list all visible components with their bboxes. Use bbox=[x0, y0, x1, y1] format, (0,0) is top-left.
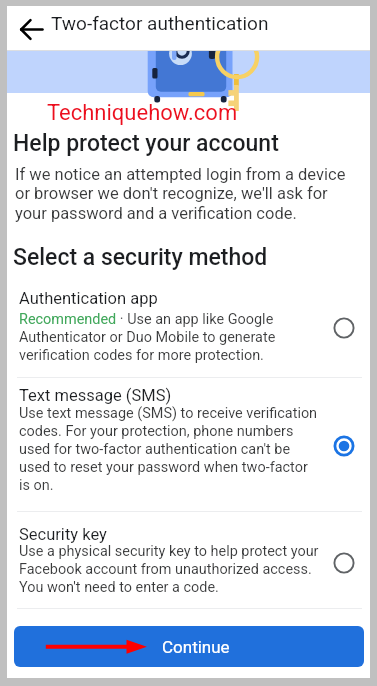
staticText: Authentication app bbox=[19, 289, 158, 308]
staticText: Continue bbox=[162, 637, 230, 657]
button[interactable]: Back bbox=[9, 8, 53, 50]
staticText: Two-factor authentication bbox=[51, 12, 269, 34]
button[interactable]: Authentication app bbox=[330, 314, 358, 342]
staticText: Help protect your account bbox=[13, 130, 279, 157]
button[interactable]: Security key bbox=[330, 549, 358, 577]
staticText: If we notice an attempted login from a d… bbox=[15, 165, 351, 223]
staticText: Use a physical security key to help prot… bbox=[19, 543, 322, 596]
button[interactable] bbox=[13, 516, 363, 605]
staticText: Use text message (SMS) to receive verifi… bbox=[19, 405, 322, 494]
staticText: Recommended · Use an app like Google Aut… bbox=[19, 311, 322, 364]
button[interactable]: Continue bbox=[14, 626, 364, 667]
staticText: Techniquehow.com bbox=[47, 100, 238, 126]
button[interactable] bbox=[13, 281, 363, 373]
staticText: Text message (SMS) bbox=[19, 386, 172, 405]
button[interactable] bbox=[13, 379, 363, 507]
button[interactable]: Text message (SMS) bbox=[330, 432, 358, 460]
staticText: Select a security method bbox=[13, 244, 268, 271]
staticText: Security key bbox=[19, 525, 107, 544]
